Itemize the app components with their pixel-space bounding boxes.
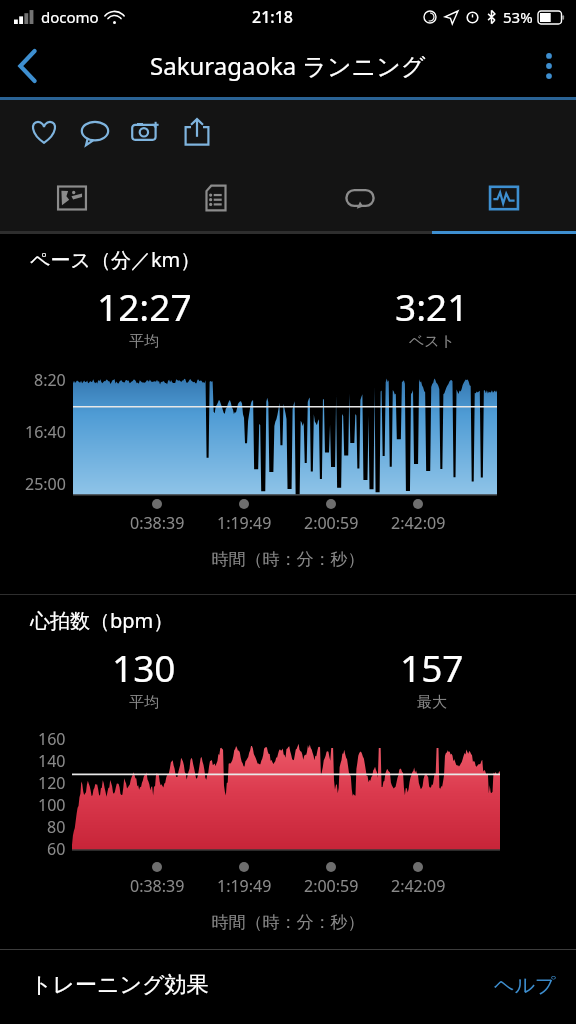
staticText: 100	[38, 794, 66, 816]
staticText: 平均	[129, 332, 159, 351]
staticText: 0:38:39	[130, 875, 185, 897]
button[interactable]: Map	[0, 164, 144, 231]
staticText: 140	[38, 750, 66, 772]
staticText: 平均	[129, 693, 159, 712]
staticText: Sakuragaoka ランニング	[150, 49, 426, 82]
staticText: 2:00:59	[304, 875, 359, 897]
staticText: 1:19:49	[217, 875, 272, 897]
staticText: 8:20	[34, 369, 66, 391]
staticText: docomo	[41, 7, 99, 27]
button[interactable]: Laps	[288, 164, 432, 231]
staticText: 心拍数（bpm）	[30, 607, 174, 634]
staticText: 25:00	[25, 473, 66, 495]
staticText: 最大	[417, 693, 447, 712]
button[interactable]: Charts	[432, 164, 576, 231]
staticText: ヘルプ	[494, 973, 556, 998]
staticText: 160	[38, 728, 66, 750]
staticText: 120	[38, 772, 66, 794]
staticText: ペース（分／km）	[30, 246, 201, 273]
staticText: 80	[47, 816, 66, 838]
button[interactable]: Like	[18, 102, 69, 162]
staticText: ベスト	[409, 332, 456, 351]
staticText: 2:00:59	[304, 512, 359, 534]
staticText: 16:40	[25, 421, 66, 443]
button[interactable]: Back	[0, 39, 54, 93]
button[interactable]: Share	[171, 102, 222, 162]
staticText: 0:38:39	[130, 512, 185, 534]
button[interactable]: More options	[522, 39, 576, 93]
staticText: 3:21	[395, 281, 469, 331]
button[interactable]: Details	[144, 164, 288, 231]
staticText: 53%	[503, 7, 533, 27]
staticText: トレーニング効果	[30, 971, 209, 999]
staticText: 60	[47, 838, 66, 858]
staticText: 時間（時：分：秒）	[0, 549, 576, 570]
staticText: 130	[112, 642, 176, 692]
button[interactable]: Comment	[69, 102, 120, 162]
staticText: 21:18	[252, 6, 293, 28]
button[interactable]: Add photo	[120, 102, 171, 162]
staticText: 2:42:09	[391, 875, 446, 897]
button[interactable]: トレーニング効果	[0, 950, 576, 1020]
staticText: 時間（時：分：秒）	[0, 912, 576, 933]
staticText: 2:42:09	[391, 512, 446, 534]
staticText: 1:19:49	[217, 512, 272, 534]
staticText: 12:27	[97, 281, 192, 331]
staticText: 157	[400, 642, 464, 692]
